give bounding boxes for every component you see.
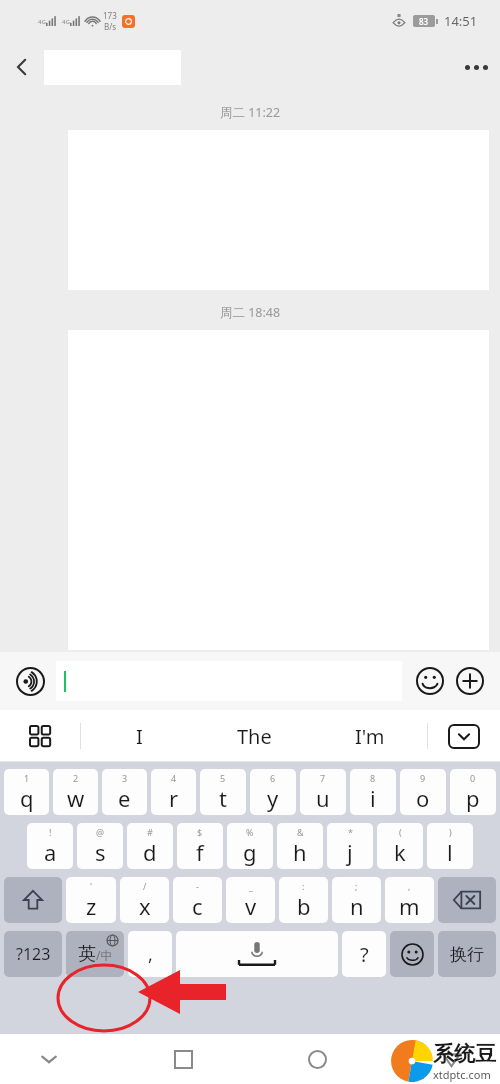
button[interactable]: Backspace [438,877,496,923]
button[interactable]: % [227,823,273,869]
button[interactable]: ) [427,823,473,869]
button[interactable]: _ [226,877,275,923]
button[interactable]: More functions [450,661,490,701]
staticText: 系统豆 [433,1041,496,1067]
button[interactable]: / [120,877,169,923]
staticText: 换行 [450,944,484,965]
button[interactable]: Emoji keyboard [390,931,434,977]
button[interactable]: , [385,877,434,923]
staticText: I [136,723,143,750]
staticText: - [196,880,199,892]
staticText: 4 [171,772,177,784]
button[interactable]: Keyboard panels [0,710,80,762]
staticText: c [192,891,203,921]
staticText: / [143,880,147,892]
staticText: g [243,837,257,867]
staticText: B/s [104,21,117,32]
button[interactable]: ! [27,823,73,869]
staticText: 周二 11:22 [0,104,500,121]
staticText: & [297,826,304,838]
button[interactable]: 9 [400,769,446,815]
button[interactable]: Voice input [10,661,50,701]
button[interactable] [176,931,338,977]
button[interactable]: * [327,823,373,869]
button[interactable]: ' [66,877,116,923]
button[interactable]: - [173,877,222,923]
button[interactable]: Back [428,1036,474,1082]
button[interactable]: 1 [4,769,49,815]
staticText: l [447,837,453,867]
staticText: b [297,891,311,921]
staticText: : [302,880,305,892]
button[interactable]: 5 [200,769,246,815]
button[interactable]: Switch language English Chinese [66,931,124,977]
staticText: ! [49,826,52,838]
button[interactable]: Hide keyboard [26,1036,72,1082]
staticText: 9 [420,772,426,784]
staticText: 周二 18:48 [0,304,500,321]
staticText: i [370,783,376,813]
button[interactable]: 换行 [438,931,496,977]
button[interactable]: Collapse suggestions [428,710,500,762]
button[interactable]: @ [77,823,123,869]
button[interactable]: 2 [53,769,98,815]
staticText: ?123 [16,943,51,965]
button[interactable]: I'm [312,710,427,762]
button[interactable]: $ [177,823,223,869]
staticText: # [147,826,153,838]
staticText: /中 [96,947,113,963]
button[interactable] [56,661,402,701]
staticText: q [20,783,34,813]
staticText: k [394,837,406,867]
staticText: $ [197,826,203,838]
button[interactable]: , [128,931,172,977]
staticText: ( [399,826,402,838]
button[interactable]: 0 [450,769,496,815]
staticText: t [219,783,227,813]
staticText: ) [449,826,452,838]
staticText: z [86,891,97,921]
button[interactable]: Shift [4,877,62,923]
button[interactable]: Emoji [410,661,450,701]
staticText: x [139,891,151,921]
button[interactable]: 3 [102,769,147,815]
staticText: xtdptc.com [433,1067,491,1082]
staticText: ? [360,941,369,968]
button[interactable]: & [277,823,323,869]
staticText: 83 [419,16,429,27]
staticText: 4G [62,18,70,26]
staticText: % [246,826,254,838]
staticText: * [348,826,353,838]
staticText: ' [90,880,93,892]
button[interactable]: ; [332,877,381,923]
staticText: h [293,837,307,867]
staticText: 2 [73,772,79,784]
staticText: s [95,837,106,867]
button[interactable]: Home [294,1036,340,1082]
button[interactable]: # [127,823,173,869]
button[interactable]: Recent apps [160,1036,206,1082]
button[interactable]: ? [342,931,386,977]
button[interactable]: 8 [350,769,396,815]
staticText: e [118,783,131,813]
button[interactable]: ( [377,823,423,869]
staticText: 0 [470,772,476,784]
button[interactable]: 7 [300,769,346,815]
button[interactable]: The [197,710,312,762]
button[interactable]: More options [452,43,500,91]
staticText: 1 [24,772,30,784]
staticText: 14:51 [444,12,478,30]
button[interactable]: 6 [250,769,296,815]
staticText: y [267,783,279,813]
staticText: j [347,837,353,867]
staticText: _ [249,880,253,892]
button[interactable]: 4 [151,769,196,815]
staticText: 5 [220,772,226,784]
button[interactable]: Back [0,45,44,89]
button[interactable]: I [81,710,197,762]
button[interactable]: ?123 [4,931,62,977]
button[interactable]: : [279,877,328,923]
